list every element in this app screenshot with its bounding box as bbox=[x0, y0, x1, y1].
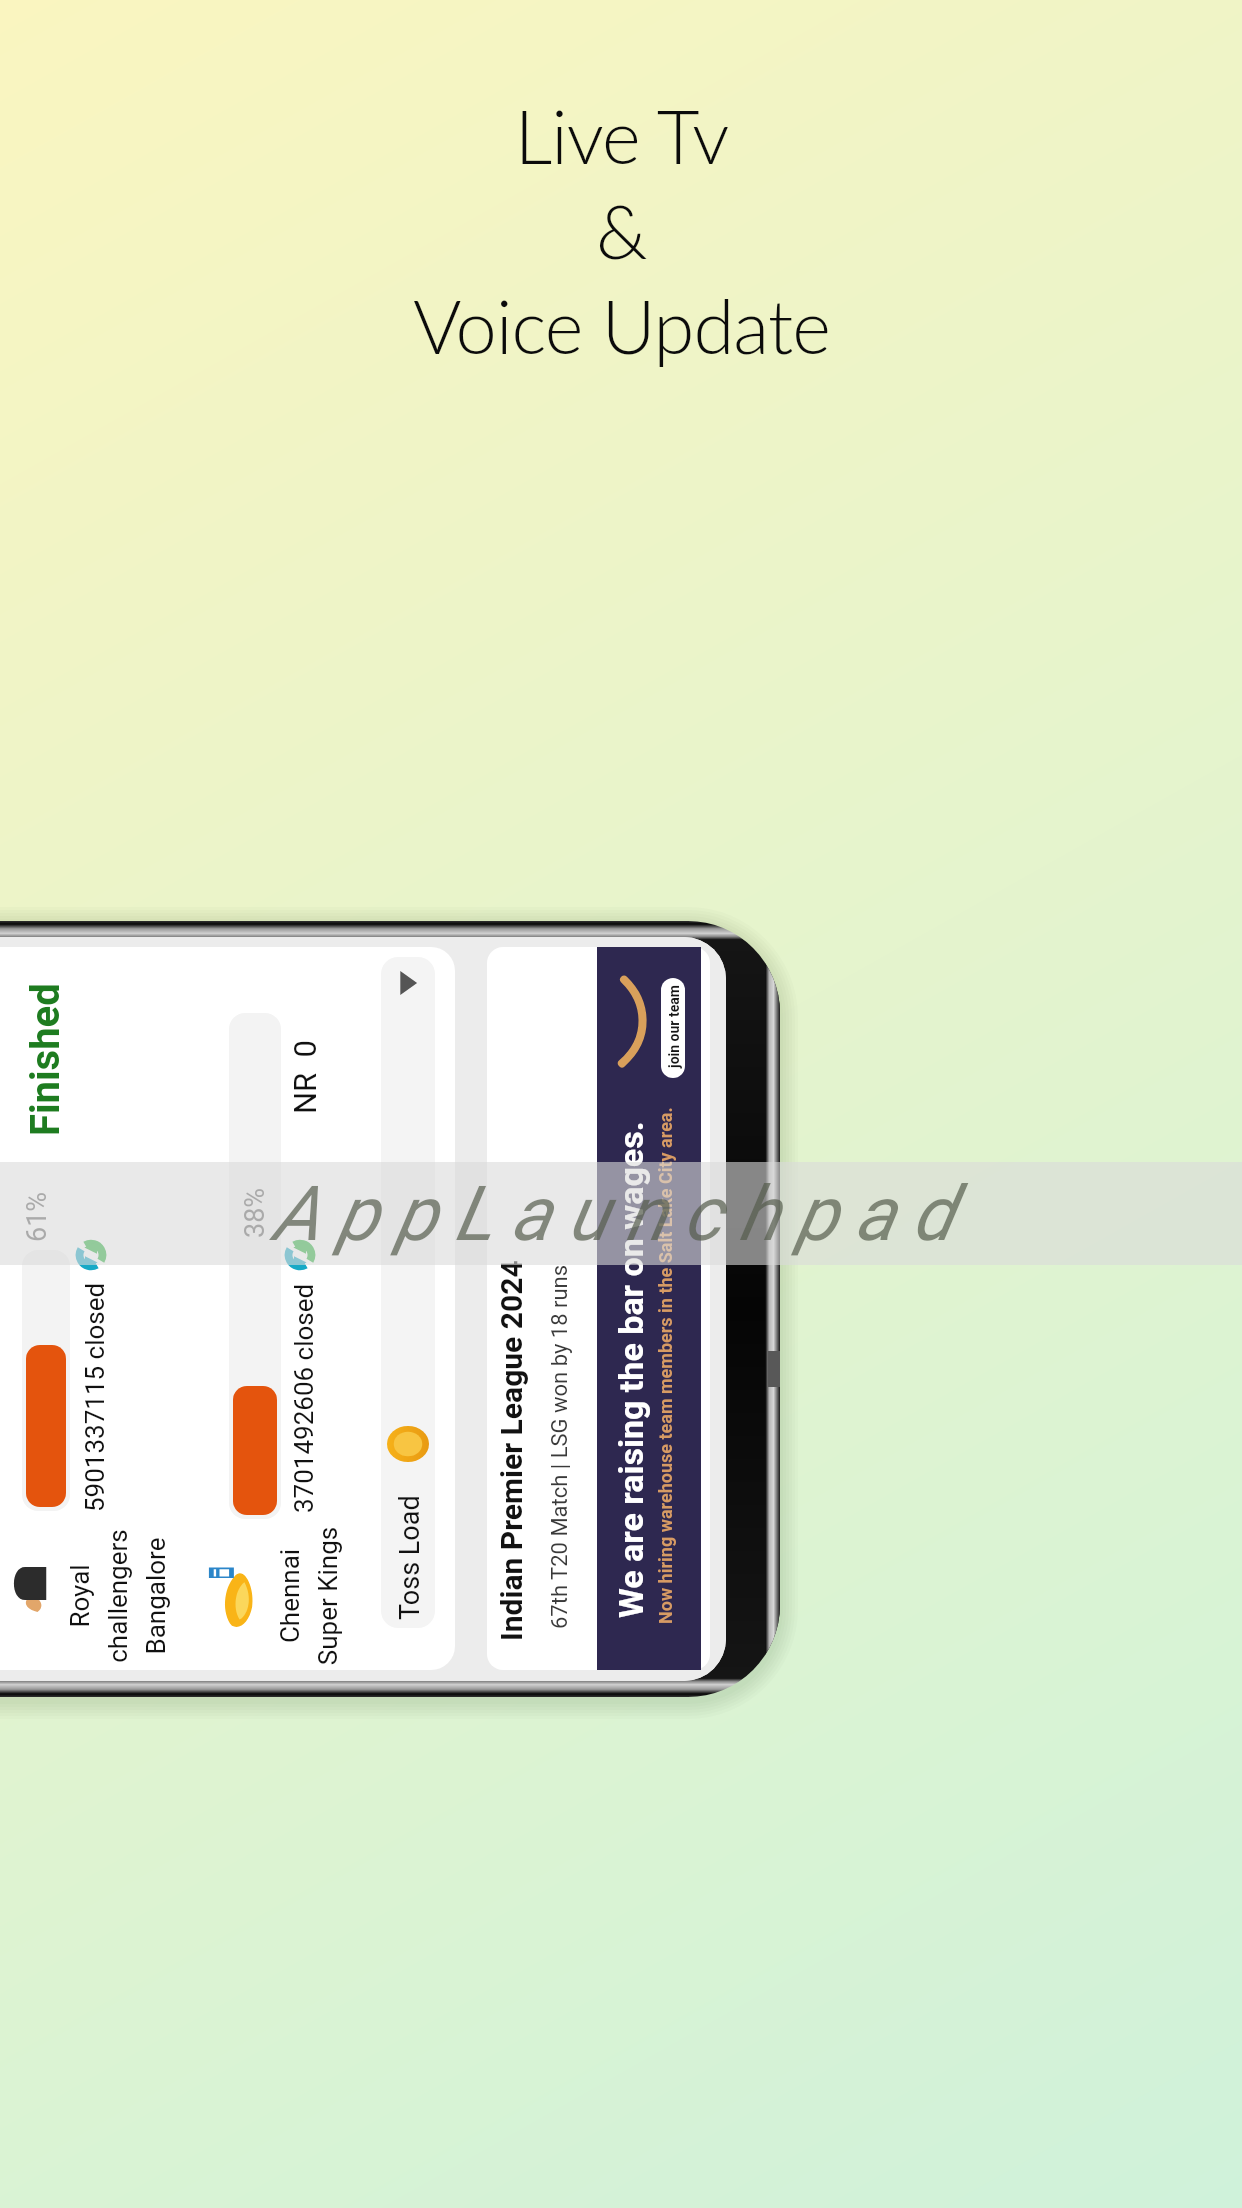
staticText: 67th T20 Match | LSG won by 18 runs bbox=[547, 1264, 573, 1629]
staticText: Royal challengers Bangalore bbox=[65, 1476, 171, 1681]
button[interactable] bbox=[487, 947, 710, 1670]
staticText: Chennai Super Kings bbox=[275, 1476, 343, 1681]
staticText: Live Tv & Voice Update bbox=[413, 91, 830, 370]
staticText: We are raising the bar on wages. bbox=[611, 1121, 651, 1618]
button[interactable] bbox=[597, 947, 701, 1670]
staticText: AppLaunchpad bbox=[272, 1169, 971, 1258]
staticText: Finished bbox=[22, 983, 69, 1136]
staticText: Toss Load bbox=[394, 1495, 426, 1620]
button[interactable]: Refresh score bbox=[76, 1240, 106, 1270]
button[interactable]: Refresh score bbox=[285, 1240, 315, 1270]
staticText: 61% bbox=[21, 1191, 53, 1242]
button[interactable] bbox=[381, 957, 435, 1628]
staticText: Now hiring warehouse team members in the… bbox=[655, 1107, 676, 1624]
button[interactable]: Expand match details bbox=[389, 960, 427, 1006]
staticText: 3701492606 closed bbox=[289, 1283, 319, 1513]
button[interactable] bbox=[661, 978, 685, 1078]
staticText: 5901337115 closed bbox=[80, 1282, 110, 1512]
button[interactable] bbox=[0, 947, 455, 1670]
staticText: Indian Premier League 2024 bbox=[494, 1260, 529, 1641]
staticText: NR 0 bbox=[287, 1039, 323, 1114]
staticText: join our team bbox=[666, 985, 682, 1068]
staticText: 38% bbox=[239, 1187, 271, 1238]
